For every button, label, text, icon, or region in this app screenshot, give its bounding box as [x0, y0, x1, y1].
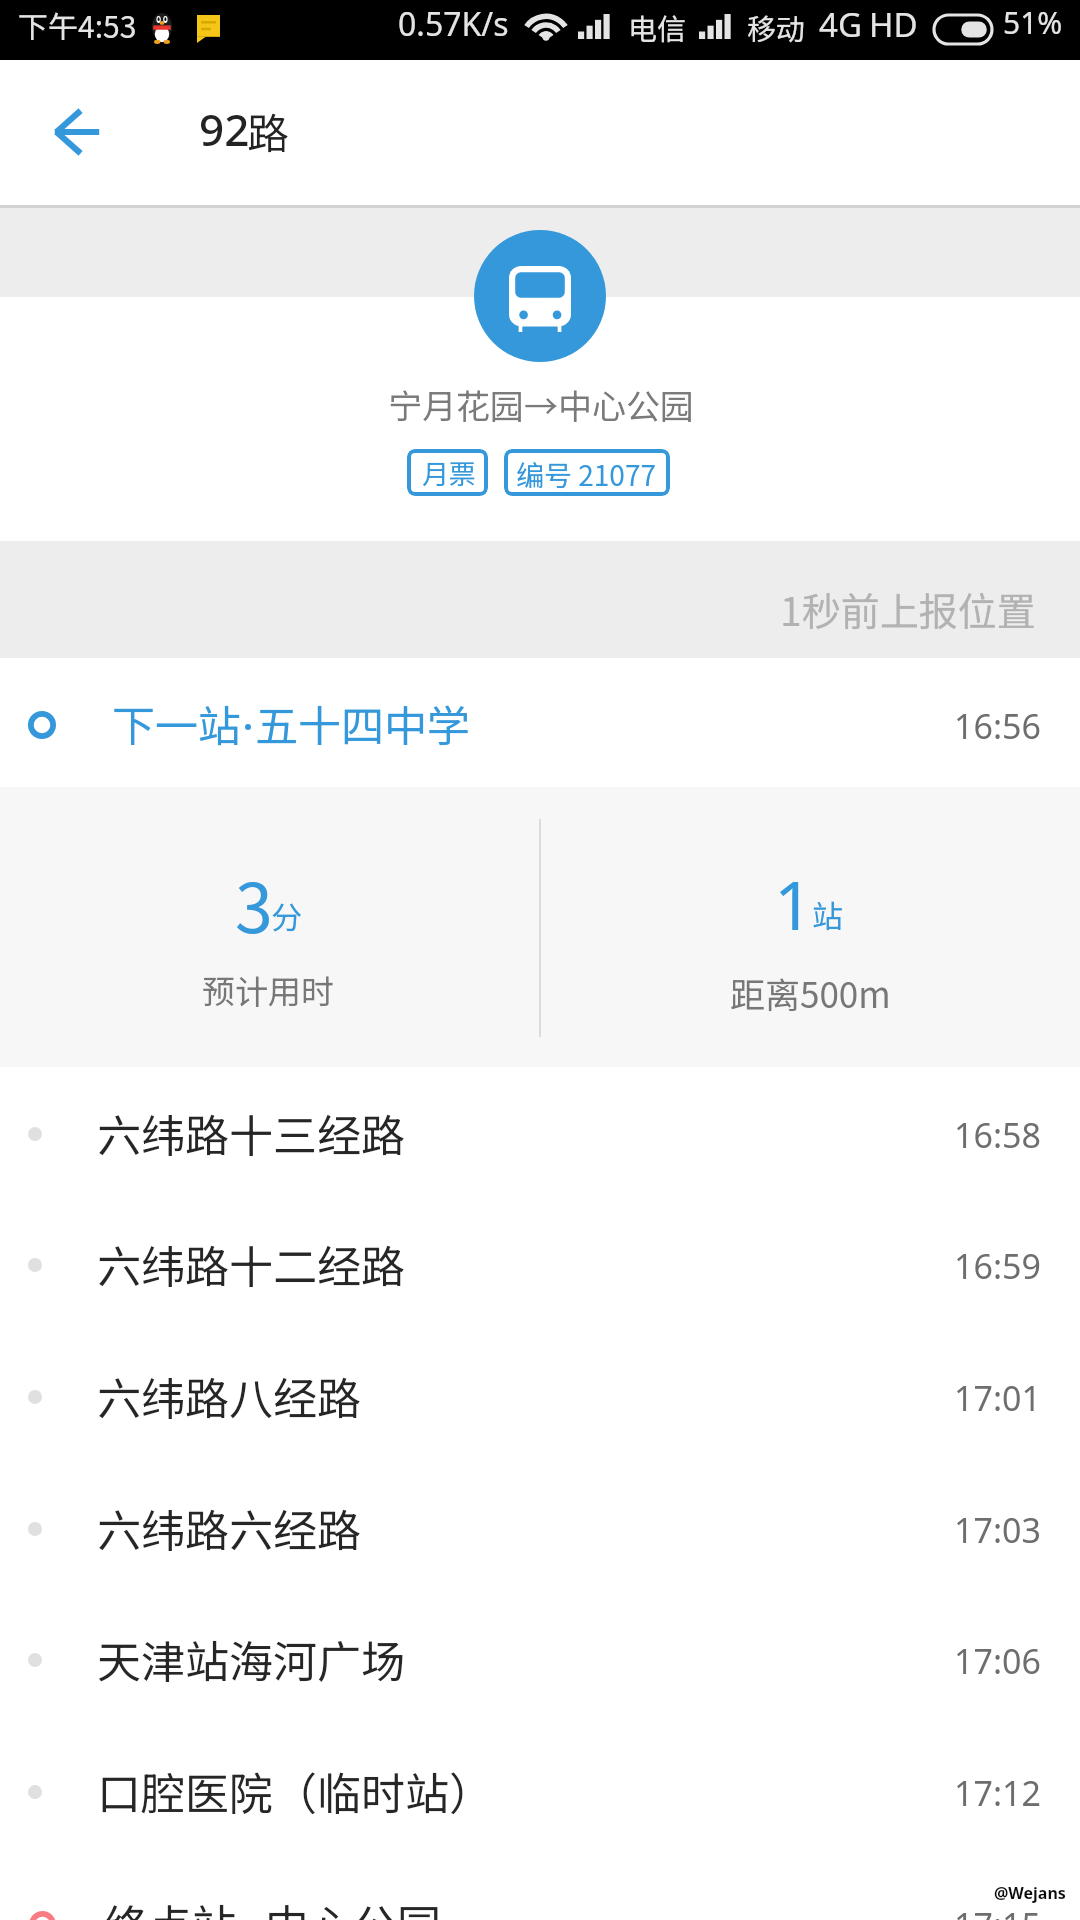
button[interactable]: 口腔医院（临时站） — [0, 1726, 1080, 1857]
staticText: 编号 21077 — [516, 454, 656, 495]
staticText: 17:12 — [954, 1770, 1041, 1816]
button[interactable]: 编号 21077 — [504, 449, 670, 496]
staticText: 中心公园 — [265, 1891, 441, 1920]
staticText: 17:01 — [954, 1375, 1041, 1421]
staticText: 宁月花园→中心公园 — [388, 380, 694, 429]
staticText: 下一站 — [112, 692, 241, 754]
button[interactable]: 天津站海河广场 — [0, 1594, 1080, 1725]
staticText: 六纬路十二经路 — [97, 1232, 405, 1296]
button[interactable]: 月票 — [407, 449, 488, 496]
staticText: 预计用时 — [202, 966, 334, 1014]
staticText: 月票 — [422, 453, 476, 492]
staticText: 六纬路六经路 — [97, 1496, 361, 1560]
staticText: 16:56 — [954, 703, 1041, 749]
button[interactable]: 六纬路十三经路 — [0, 1068, 1080, 1199]
staticText: 天津站海河广场 — [97, 1627, 405, 1691]
staticText: 17:06 — [954, 1638, 1041, 1684]
staticText: 距离500m — [730, 967, 891, 1018]
staticText: HD — [869, 2, 918, 47]
staticText: 终点站 — [104, 1891, 236, 1920]
staticText: 六纬路十三经路 — [97, 1101, 405, 1165]
button[interactable]: 下一站 — [0, 658, 1080, 787]
button[interactable]: 1 — [541, 787, 1080, 1067]
staticText: 六纬路八经路 — [97, 1364, 361, 1428]
staticText: 17:15 — [954, 1902, 1041, 1920]
button[interactable]: 3 — [0, 787, 539, 1067]
staticText: 电信 — [628, 6, 687, 48]
staticText: 五十四中学 — [255, 692, 470, 754]
staticText: 3 — [235, 854, 273, 952]
staticText: 92 — [199, 99, 250, 159]
button[interactable]: 六纬路十二经路 — [0, 1199, 1080, 1330]
staticText: @Wejans — [994, 1882, 1066, 1904]
button[interactable]: 终点站 — [0, 1858, 1080, 1920]
staticText: 1秒前上报位置 — [780, 581, 1036, 637]
staticText: 16:59 — [954, 1243, 1041, 1289]
button[interactable]: 六纬路八经路 — [0, 1331, 1080, 1462]
staticText: 下午4:53 — [18, 3, 137, 46]
staticText: 移动 — [747, 6, 806, 48]
staticText: 51% — [1003, 2, 1063, 43]
button[interactable]: Back — [33, 104, 121, 162]
staticText: 1 — [774, 857, 813, 950]
staticText: 口腔医院（临时站） — [97, 1759, 493, 1823]
staticText: 路 — [247, 100, 290, 161]
staticText: 站 — [812, 892, 843, 937]
staticText: 16:58 — [954, 1112, 1041, 1158]
staticText: 4G — [819, 2, 862, 47]
staticText: 分 — [271, 893, 302, 938]
staticText: 17:03 — [954, 1507, 1041, 1553]
button[interactable]: 六纬路六经路 — [0, 1463, 1080, 1594]
staticText: 0.57K/s — [398, 2, 509, 46]
